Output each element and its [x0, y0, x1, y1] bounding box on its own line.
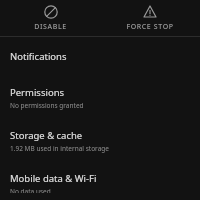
staticText: Notifications [10, 50, 67, 63]
staticText: Storage & cache [10, 129, 83, 142]
button[interactable]: Disable app [34, 2, 67, 35]
button[interactable]: Storage & cache [0, 122, 200, 160]
button[interactable]: Permissions [0, 79, 200, 117]
staticText: FORCE STOP [126, 22, 174, 32]
staticText: DISABLE [34, 22, 67, 32]
staticText: Permissions [10, 86, 65, 99]
button[interactable]: Notifications [0, 43, 200, 70]
button[interactable]: Mobile data & Wi-Fi [0, 165, 200, 200]
staticText: No data used [10, 187, 51, 193]
staticText: Mobile data & Wi-Fi [10, 172, 97, 185]
button[interactable]: Force stop app [126, 2, 174, 35]
staticText: 1.92 MB used in internal storage [10, 144, 109, 153]
staticText: No permissions granted [10, 101, 84, 110]
